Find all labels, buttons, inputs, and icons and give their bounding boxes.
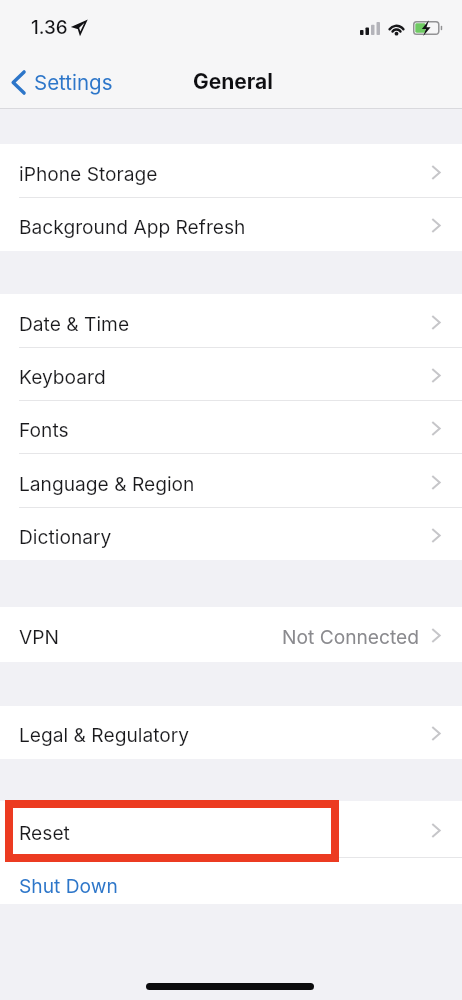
button[interactable]: iPhone Storage xyxy=(0,144,462,198)
button[interactable]: Reset xyxy=(0,801,462,858)
staticText: Settings xyxy=(34,70,113,95)
staticText: Legal & Regulatory xyxy=(19,723,190,746)
staticText: Reset xyxy=(19,821,70,844)
staticText: Not Connected xyxy=(282,625,420,648)
button[interactable]: VPN xyxy=(0,607,462,662)
staticText: Keyboard xyxy=(19,365,106,388)
button[interactable]: Dictionary xyxy=(0,508,462,560)
staticText: General xyxy=(193,69,274,94)
button[interactable]: Back to Settings xyxy=(0,65,125,100)
button[interactable]: Fonts xyxy=(0,401,462,454)
button[interactable]: Language & Region xyxy=(0,454,462,508)
staticText: Fonts xyxy=(19,418,69,441)
staticText: iPhone Storage xyxy=(19,162,158,185)
button[interactable]: Date & Time xyxy=(0,294,462,348)
staticText: Date & Time xyxy=(19,312,130,335)
staticText: Background App Refresh xyxy=(19,215,246,238)
button[interactable]: Keyboard xyxy=(0,348,462,401)
button[interactable]: Legal & Regulatory xyxy=(0,706,462,759)
staticText: Dictionary xyxy=(19,525,112,548)
button[interactable]: Background App Refresh xyxy=(0,198,462,251)
button[interactable]: Shut Down xyxy=(0,858,462,904)
staticText: VPN xyxy=(19,625,59,648)
staticText: Language & Region xyxy=(19,472,195,495)
staticText: 1.36 xyxy=(31,16,68,39)
staticText: Shut Down xyxy=(19,874,118,897)
